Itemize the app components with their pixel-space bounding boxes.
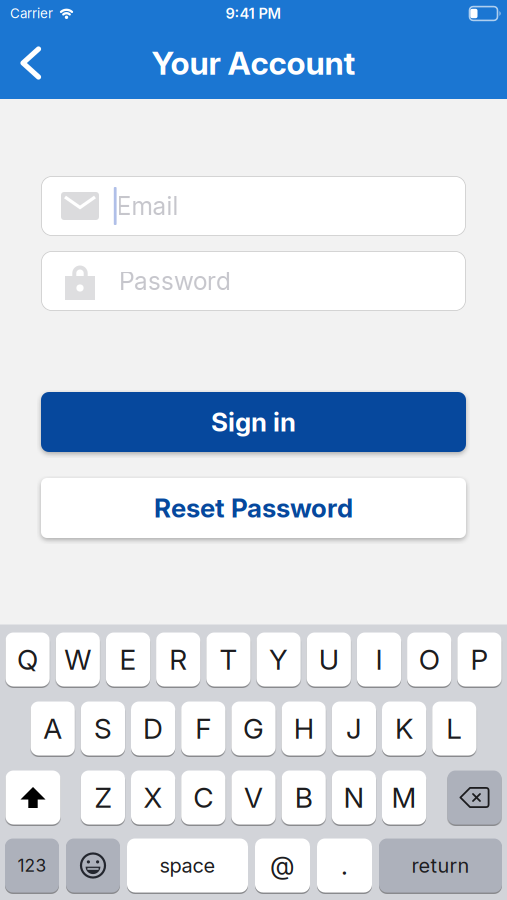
staticText: X bbox=[144, 781, 163, 814]
staticText: M bbox=[392, 781, 417, 814]
button[interactable]: Delete bbox=[447, 770, 501, 824]
button[interactable]: P bbox=[457, 632, 501, 686]
button[interactable]: Back bbox=[0, 30, 57, 96]
staticText: G bbox=[243, 712, 264, 745]
staticText: space bbox=[159, 853, 215, 878]
button[interactable]: G bbox=[231, 701, 276, 755]
staticText: 9:41 PM bbox=[225, 5, 281, 22]
button[interactable]: J bbox=[332, 701, 376, 755]
button[interactable]: T bbox=[206, 632, 250, 686]
staticText: Email bbox=[117, 191, 179, 221]
staticText: D bbox=[143, 712, 163, 745]
staticText: N bbox=[343, 781, 364, 814]
button[interactable]: X bbox=[131, 770, 175, 824]
button[interactable]: Reset Password bbox=[41, 478, 466, 538]
staticText: K bbox=[395, 712, 413, 745]
staticText: W bbox=[64, 643, 91, 676]
button[interactable]: I bbox=[357, 632, 401, 686]
button[interactable]: S bbox=[81, 701, 125, 755]
button[interactable]: A bbox=[31, 701, 75, 755]
button[interactable]: space bbox=[127, 838, 248, 892]
button[interactable]: return bbox=[379, 838, 502, 892]
staticText: V bbox=[244, 781, 263, 814]
button[interactable]: R bbox=[156, 632, 200, 686]
staticText: Sign in bbox=[211, 406, 296, 438]
button[interactable]: C bbox=[181, 770, 225, 824]
staticText: F bbox=[195, 712, 211, 745]
staticText: Y bbox=[269, 643, 288, 676]
staticText: return bbox=[411, 853, 469, 878]
button[interactable]: V bbox=[231, 770, 276, 824]
button[interactable]: Shift bbox=[5, 770, 60, 824]
button[interactable]: Password bbox=[41, 251, 466, 311]
staticText: C bbox=[193, 781, 213, 814]
staticText: Your Account bbox=[151, 44, 355, 82]
button[interactable]: B bbox=[282, 770, 326, 824]
button[interactable]: W bbox=[56, 632, 100, 686]
button[interactable]: F bbox=[181, 701, 225, 755]
staticText: T bbox=[219, 643, 237, 676]
button[interactable]: H bbox=[282, 701, 326, 755]
staticText: U bbox=[319, 643, 339, 676]
staticText: Reset Password bbox=[154, 492, 353, 524]
staticText: P bbox=[470, 643, 488, 676]
button[interactable]: E bbox=[106, 632, 150, 686]
staticText: Q bbox=[17, 643, 38, 676]
staticText: A bbox=[43, 712, 62, 745]
staticText: L bbox=[446, 712, 462, 745]
staticText: S bbox=[94, 712, 112, 745]
staticText: Z bbox=[94, 781, 111, 814]
button[interactable]: L bbox=[432, 701, 476, 755]
button[interactable]: 123 bbox=[5, 838, 59, 892]
staticText: B bbox=[295, 781, 313, 814]
button[interactable]: Email bbox=[41, 176, 466, 236]
button[interactable]: O bbox=[407, 632, 451, 686]
staticText: R bbox=[169, 643, 187, 676]
staticText: E bbox=[119, 643, 136, 676]
button[interactable]: Emoji bbox=[66, 838, 120, 892]
button[interactable]: Q bbox=[5, 632, 50, 686]
staticText: 123 bbox=[17, 855, 46, 876]
staticText: Password bbox=[119, 266, 231, 296]
staticText: J bbox=[346, 712, 362, 745]
button[interactable]: @ bbox=[255, 838, 310, 892]
staticText: Carrier bbox=[10, 5, 53, 21]
staticText: . bbox=[341, 850, 348, 881]
button[interactable]: Z bbox=[81, 770, 125, 824]
button[interactable]: Y bbox=[256, 632, 301, 686]
button[interactable]: . bbox=[317, 838, 372, 892]
button[interactable]: K bbox=[382, 701, 426, 755]
staticText: @ bbox=[270, 850, 295, 881]
button[interactable]: M bbox=[382, 770, 426, 824]
staticText: I bbox=[375, 643, 382, 676]
staticText: O bbox=[419, 643, 440, 676]
button[interactable]: D bbox=[131, 701, 175, 755]
staticText: H bbox=[294, 712, 314, 745]
button[interactable]: U bbox=[307, 632, 351, 686]
button[interactable]: Sign in bbox=[41, 392, 466, 452]
button[interactable]: N bbox=[332, 770, 376, 824]
